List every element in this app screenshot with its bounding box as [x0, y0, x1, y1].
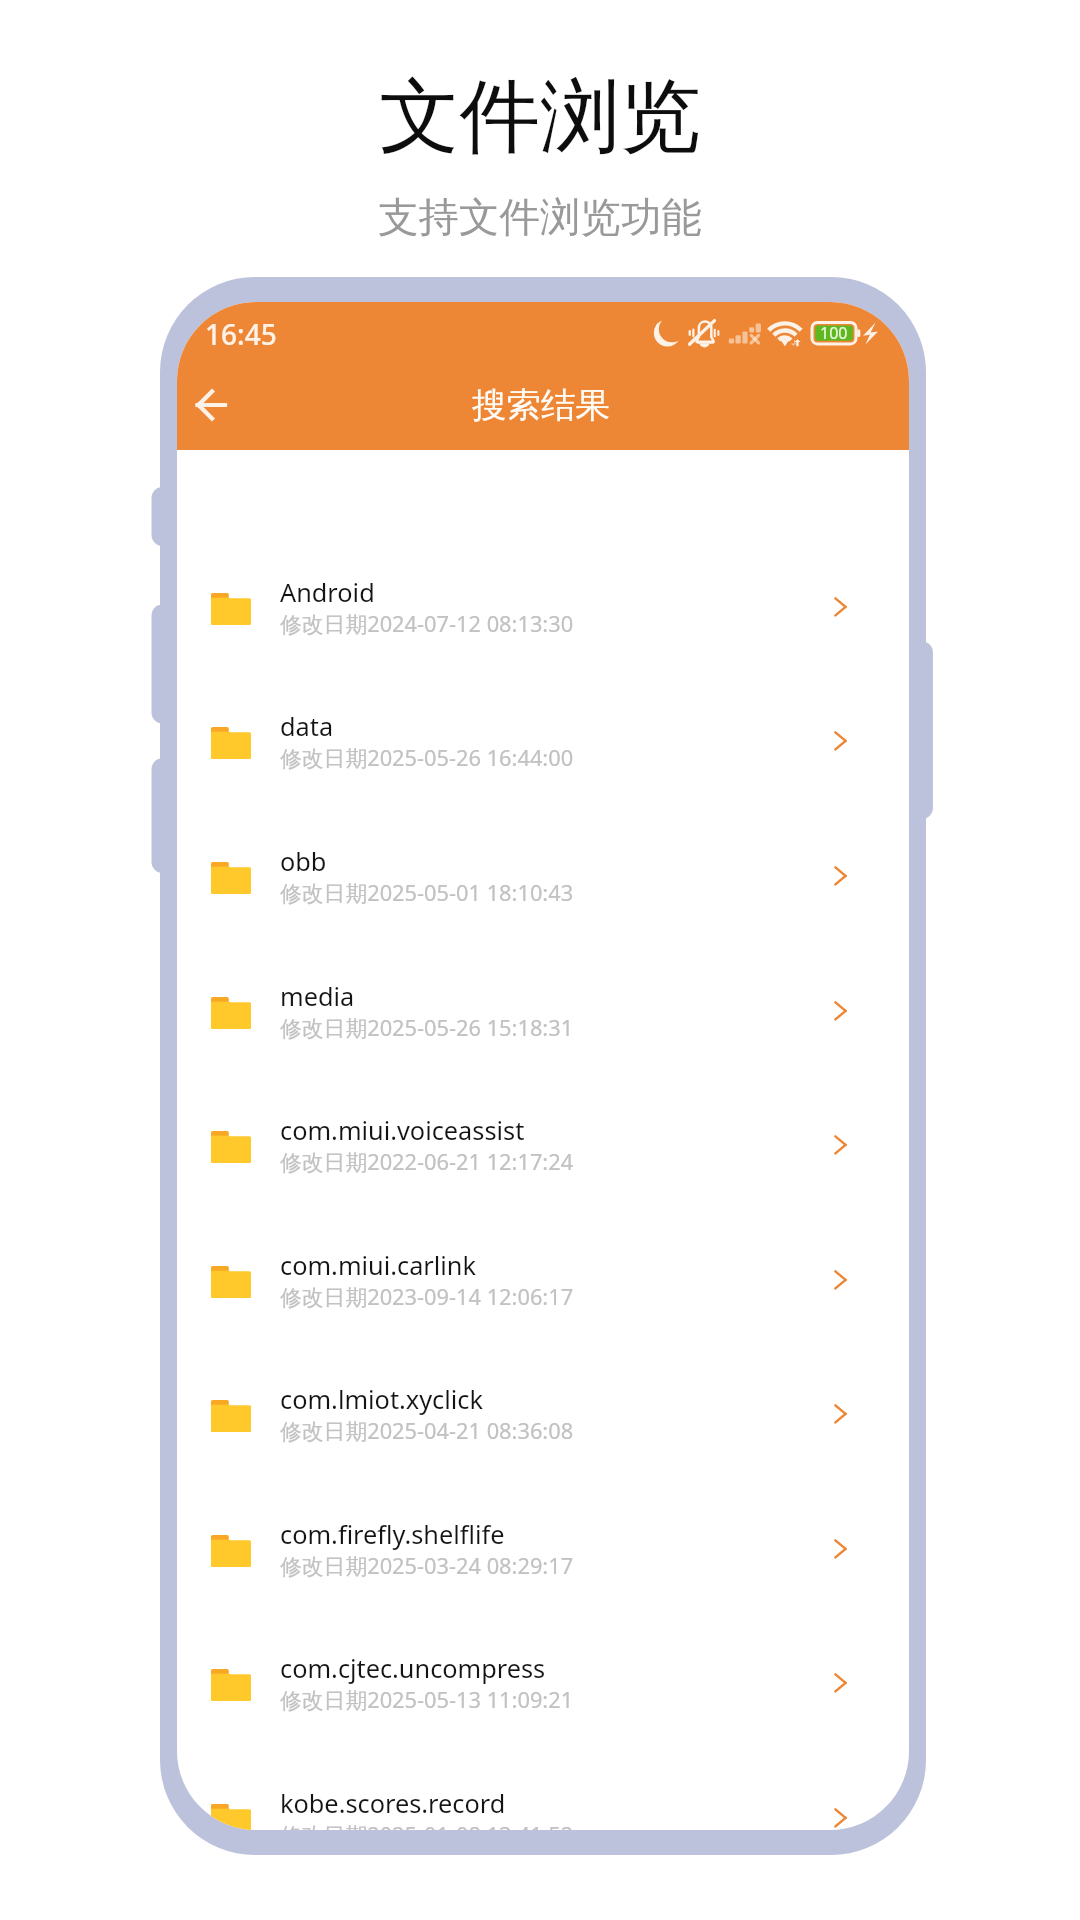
button[interactable]: Back	[183, 377, 239, 433]
staticText: com.miui.carlink	[280, 1248, 476, 1282]
staticText: 修改日期2025-04-21 08:36:08	[280, 1416, 574, 1446]
button[interactable]: com.miui.voiceassist	[177, 1073, 909, 1208]
staticText: 修改日期2025-01-08 13:41:52	[280, 1820, 574, 1830]
staticText: 修改日期2024-07-12 08:13:30	[280, 609, 574, 639]
button[interactable]: obb	[177, 804, 909, 939]
staticText: 修改日期2025-05-01 18:10:43	[280, 878, 574, 908]
staticText: 100	[820, 322, 848, 344]
staticText: 16:45	[205, 315, 277, 353]
button[interactable]: com.miui.carlink	[177, 1208, 909, 1343]
staticText: 修改日期2025-05-26 16:44:00	[280, 743, 574, 773]
staticText: 修改日期2025-05-26 15:18:31	[280, 1013, 574, 1043]
button[interactable]: Android	[177, 535, 909, 670]
staticText: 文件浏览	[379, 66, 701, 167]
button[interactable]: media	[177, 939, 909, 1074]
button[interactable]: kobe.scores.record	[177, 1746, 909, 1830]
staticText: com.cjtec.uncompress	[280, 1651, 546, 1685]
staticText: 修改日期2023-09-14 12:06:17	[280, 1282, 574, 1312]
staticText: media	[280, 979, 355, 1013]
staticText: 修改日期2022-06-21 12:17:24	[280, 1147, 574, 1177]
button[interactable]: data	[177, 669, 909, 804]
staticText: com.miui.voiceassist	[280, 1113, 525, 1147]
staticText: com.firefly.shelflife	[280, 1517, 505, 1551]
staticText: data	[280, 709, 334, 743]
button[interactable]: com.cjtec.uncompress	[177, 1611, 909, 1746]
button[interactable]: com.firefly.shelflife	[177, 1477, 909, 1612]
staticText: Android	[280, 575, 375, 609]
staticText: kobe.scores.record	[280, 1786, 506, 1820]
staticText: 修改日期2025-05-13 11:09:21	[280, 1685, 574, 1715]
staticText: 修改日期2025-03-24 08:29:17	[280, 1551, 574, 1581]
staticText: obb	[280, 844, 327, 878]
button[interactable]: com.lmiot.xyclick	[177, 1342, 909, 1477]
staticText: 搜索结果	[472, 384, 610, 427]
staticText: 支持文件浏览功能	[378, 192, 702, 243]
staticText: com.lmiot.xyclick	[280, 1382, 483, 1416]
